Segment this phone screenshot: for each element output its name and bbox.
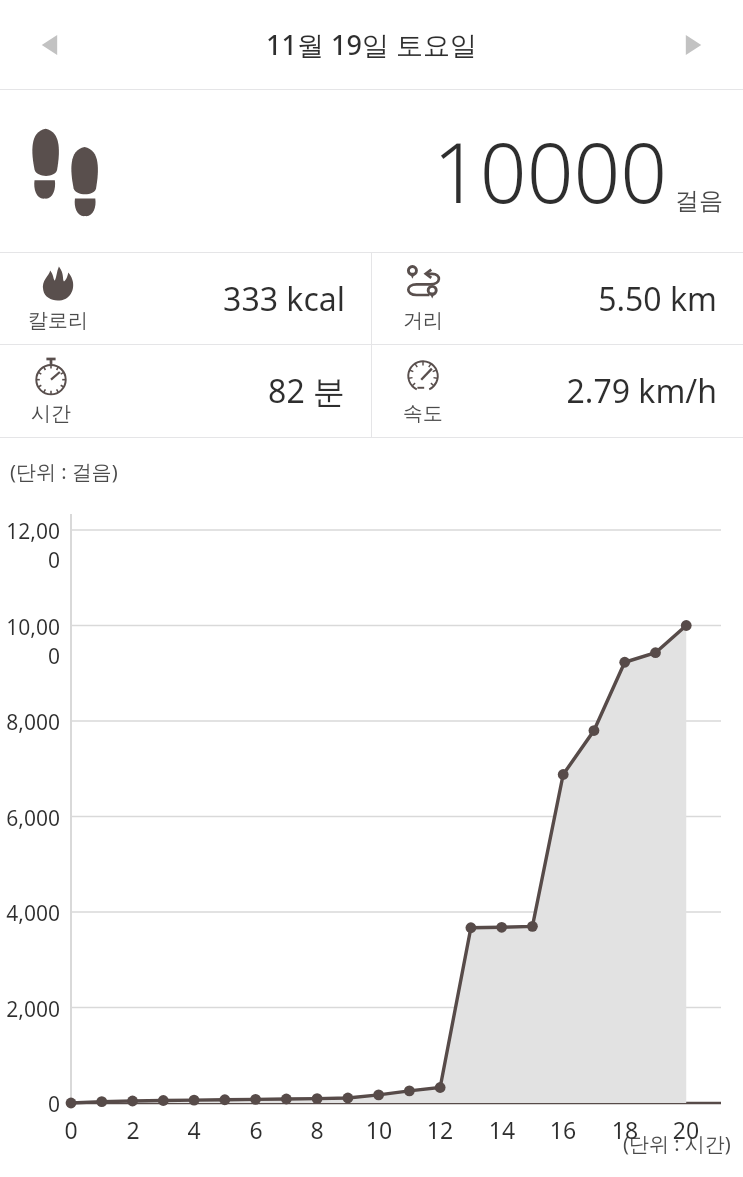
staticText: 4,000	[0, 899, 60, 928]
staticText: 칼로리	[28, 308, 88, 333]
button[interactable]: 시간	[0, 345, 371, 437]
staticText: 속도	[403, 401, 443, 426]
staticText: 10000	[433, 115, 668, 227]
staticText: 2,000	[0, 995, 60, 1024]
staticText: 10,000	[0, 613, 60, 671]
staticText: 82 분	[268, 369, 345, 413]
staticText: 2	[113, 1114, 153, 1145]
button[interactable]: Previous day	[22, 16, 80, 74]
staticText: 6,000	[0, 804, 60, 833]
button[interactable]: Next day	[663, 16, 721, 74]
staticText: 8,000	[0, 708, 60, 737]
staticText: (단위 : 시간)	[623, 1130, 731, 1157]
staticText: 2.79 km/h	[566, 369, 717, 413]
staticText: (단위 : 걸음)	[10, 458, 118, 485]
staticText: 12,000	[0, 517, 60, 575]
staticText: 5.50 km	[598, 277, 717, 321]
staticText: 10	[359, 1114, 399, 1145]
staticText: 걸음	[675, 186, 723, 216]
staticText: 0	[0, 1090, 60, 1119]
staticText: 14	[482, 1114, 522, 1145]
staticText: 시간	[31, 401, 71, 426]
button[interactable]: 속도	[372, 345, 743, 437]
staticText: 거리	[403, 308, 443, 333]
staticText: 11월 19일 토요일	[266, 26, 477, 63]
staticText: 20	[666, 1114, 706, 1145]
button[interactable]: 10000	[0, 90, 743, 252]
staticText: 6	[236, 1114, 276, 1145]
staticText: 16	[543, 1114, 583, 1145]
staticText: 18	[605, 1114, 645, 1145]
staticText: 4	[174, 1114, 214, 1145]
staticText: 8	[297, 1114, 337, 1145]
button[interactable]: 거리	[372, 253, 743, 344]
staticText: 333 kcal	[223, 277, 345, 321]
staticText: 0	[51, 1114, 91, 1145]
button[interactable]: 칼로리	[0, 253, 371, 344]
staticText: 12	[420, 1114, 460, 1145]
